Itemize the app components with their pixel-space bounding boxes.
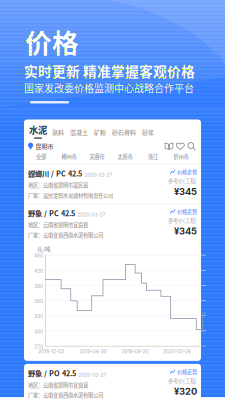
- button[interactable]: 太原市: [111, 153, 139, 160]
- staticText: 熟料: [52, 128, 64, 136]
- staticText: 参考价(工程): [168, 377, 197, 384]
- staticText: 野象 / PO 42.5: [28, 368, 76, 378]
- staticText: 价格走势: [177, 208, 197, 215]
- button[interactable]: 野象 / PC 42.5: [24, 204, 201, 243]
- button[interactable]: 野象 / PO 42.5: [24, 364, 201, 400]
- staticText: 2019-04-30: [79, 348, 106, 354]
- staticText: 全部: [36, 153, 46, 160]
- button[interactable]: 矿粉: [91, 128, 109, 139]
- staticText: 郴州市: [61, 153, 76, 160]
- staticText: 2018-12-03: [38, 348, 64, 354]
- staticText: 270: [34, 344, 43, 350]
- button[interactable]: 忻州市: [167, 153, 195, 160]
- staticText: 昆明市: [36, 142, 54, 150]
- button[interactable]: 砂浆: [139, 128, 157, 139]
- staticText: 价格: [25, 22, 79, 61]
- staticText: 元/吨: [37, 245, 51, 253]
- button[interactable]: 搜索: [187, 142, 196, 151]
- staticText: 太原市: [117, 153, 132, 160]
- staticText: 地区：云南省昆明市宜良县: [28, 221, 88, 228]
- staticText: ¥320: [174, 386, 197, 397]
- staticText: 420: [34, 268, 43, 274]
- staticText: 混凝土: [70, 128, 88, 136]
- staticText: 厂家：云南宜良西南水泥有限公司: [28, 391, 103, 399]
- button[interactable]: 螳螂川 / PC 42.5: [24, 164, 201, 203]
- staticText: 360: [34, 298, 43, 304]
- staticText: 地区：云南省昆明市富民县: [28, 181, 88, 189]
- staticText: 2020-03-27: [78, 372, 106, 378]
- staticText: 砂石骨料: [112, 128, 136, 136]
- staticText: 2020-02-26: [163, 348, 191, 354]
- button[interactable]: 熟料: [49, 128, 67, 139]
- button[interactable]: 郴州市: [55, 153, 83, 160]
- staticText: 忻州市: [173, 153, 188, 160]
- staticText: 2019-09-20: [121, 348, 148, 354]
- staticText: 浙江: [148, 153, 158, 160]
- staticText: 450: [34, 253, 43, 259]
- button[interactable]: 水泥: [27, 123, 49, 139]
- button[interactable]: 混凝土: [67, 128, 91, 139]
- staticText: 地区：云南省昆明市宜良县: [28, 381, 88, 389]
- staticText: 参考价(工程): [168, 177, 197, 185]
- staticText: 国家发改委价格监测中心战略合作平台: [24, 81, 194, 95]
- staticText: 厂家：云南宜良西南水泥有限公司: [28, 231, 103, 239]
- staticText: 2020-03-27: [77, 212, 105, 218]
- staticText: 2020-03-27: [84, 172, 112, 178]
- staticText: 螳螂川 / PC 42.5: [28, 168, 82, 179]
- staticText: 价格走势: [177, 368, 197, 375]
- staticText: ¥345: [174, 225, 197, 237]
- staticText: 砂浆: [142, 128, 154, 136]
- staticText: 水泥: [29, 123, 47, 136]
- staticText: 330: [34, 313, 43, 319]
- staticText: 野象 / PC 42.5: [28, 208, 75, 218]
- staticText: 390: [34, 283, 43, 289]
- staticText: 300: [34, 328, 43, 335]
- staticText: 芙蓉市: [89, 153, 104, 160]
- staticText: 参考价(工程): [168, 217, 197, 224]
- staticText: 价格走势: [177, 168, 197, 176]
- staticText: 实时更新 精准掌握客观价格: [24, 61, 195, 81]
- button[interactable]: 芙蓉市: [83, 153, 111, 160]
- button[interactable]: 收藏: [176, 142, 185, 151]
- staticText: ¥345: [174, 186, 197, 197]
- button[interactable]: 全部: [27, 153, 55, 160]
- button[interactable]: 砂石骨料: [109, 128, 139, 139]
- button[interactable]: 目录: [165, 142, 174, 151]
- button[interactable]: 浙江: [139, 153, 167, 160]
- staticText: 矿粉: [94, 128, 106, 136]
- staticText: 厂家：富民金锐水泥建材有限责任公司: [28, 191, 113, 199]
